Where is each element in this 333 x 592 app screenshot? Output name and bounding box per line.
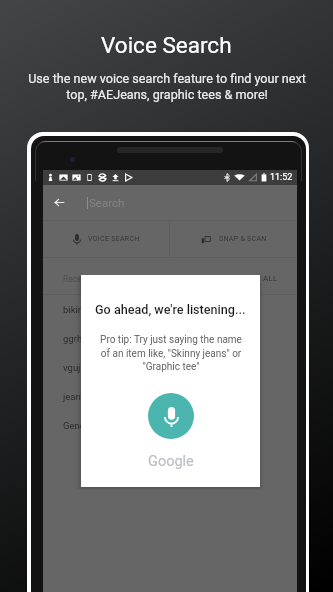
staticText: General — [63, 420, 96, 431]
button[interactable]: Back — [43, 185, 297, 220]
button[interactable]: Start voice search — [148, 393, 194, 439]
staticText: Search — [89, 196, 125, 209]
other: Back — [54, 197, 65, 208]
staticText: vguj — [63, 362, 81, 373]
button[interactable]: jeans — [63, 382, 277, 411]
staticText: Voice Search — [101, 32, 232, 58]
staticText: Use the new voice search feature to find… — [28, 71, 306, 102]
button[interactable]: CLEAR ALL — [235, 274, 278, 283]
staticText: ggrhj — [63, 333, 85, 344]
button[interactable]: SNAP & SCAN — [170, 221, 297, 257]
staticText: jeans — [63, 391, 86, 402]
staticText: Recent — [63, 274, 90, 284]
staticText: CLEAR ALL — [235, 274, 278, 283]
button[interactable]: General — [63, 411, 277, 440]
button[interactable]: bikini — [63, 295, 277, 324]
button[interactable]: vguj — [63, 353, 277, 382]
button[interactable]: ggrhj — [63, 324, 277, 353]
button[interactable]: VOICE SEARCH — [43, 221, 169, 257]
staticText: VOICE SEARCH — [88, 235, 140, 243]
staticText: Google — [148, 453, 194, 470]
staticText: bikini — [63, 304, 86, 315]
staticText: Go ahead, we're listening... — [95, 302, 246, 317]
staticText: Pro tip: Try just saying the name of an … — [100, 334, 242, 372]
staticText: SNAP & SCAN — [219, 235, 267, 243]
staticText: 11:52 — [270, 172, 293, 183]
